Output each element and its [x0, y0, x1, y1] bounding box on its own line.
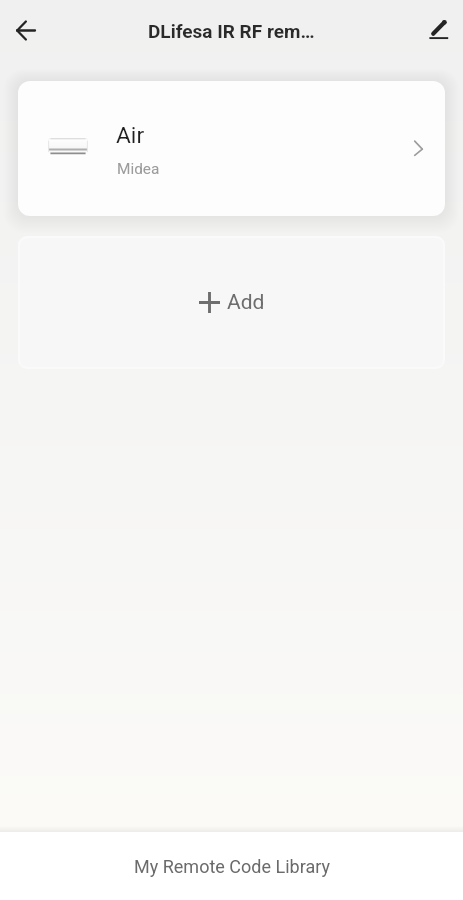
staticText: Midea — [117, 160, 160, 178]
staticText: My Remote Code Library — [134, 856, 330, 877]
button[interactable]: My Remote Code Library — [0, 832, 463, 900]
staticText: Add — [227, 290, 265, 315]
button[interactable]: Back — [3, 8, 47, 52]
button[interactable]: Air — [18, 81, 445, 216]
staticText: Air — [116, 122, 145, 149]
button[interactable]: Add — [18, 236, 445, 369]
button[interactable]: Edit — [416, 8, 460, 52]
staticText: DLifesa IR RF rem… — [148, 20, 315, 42]
